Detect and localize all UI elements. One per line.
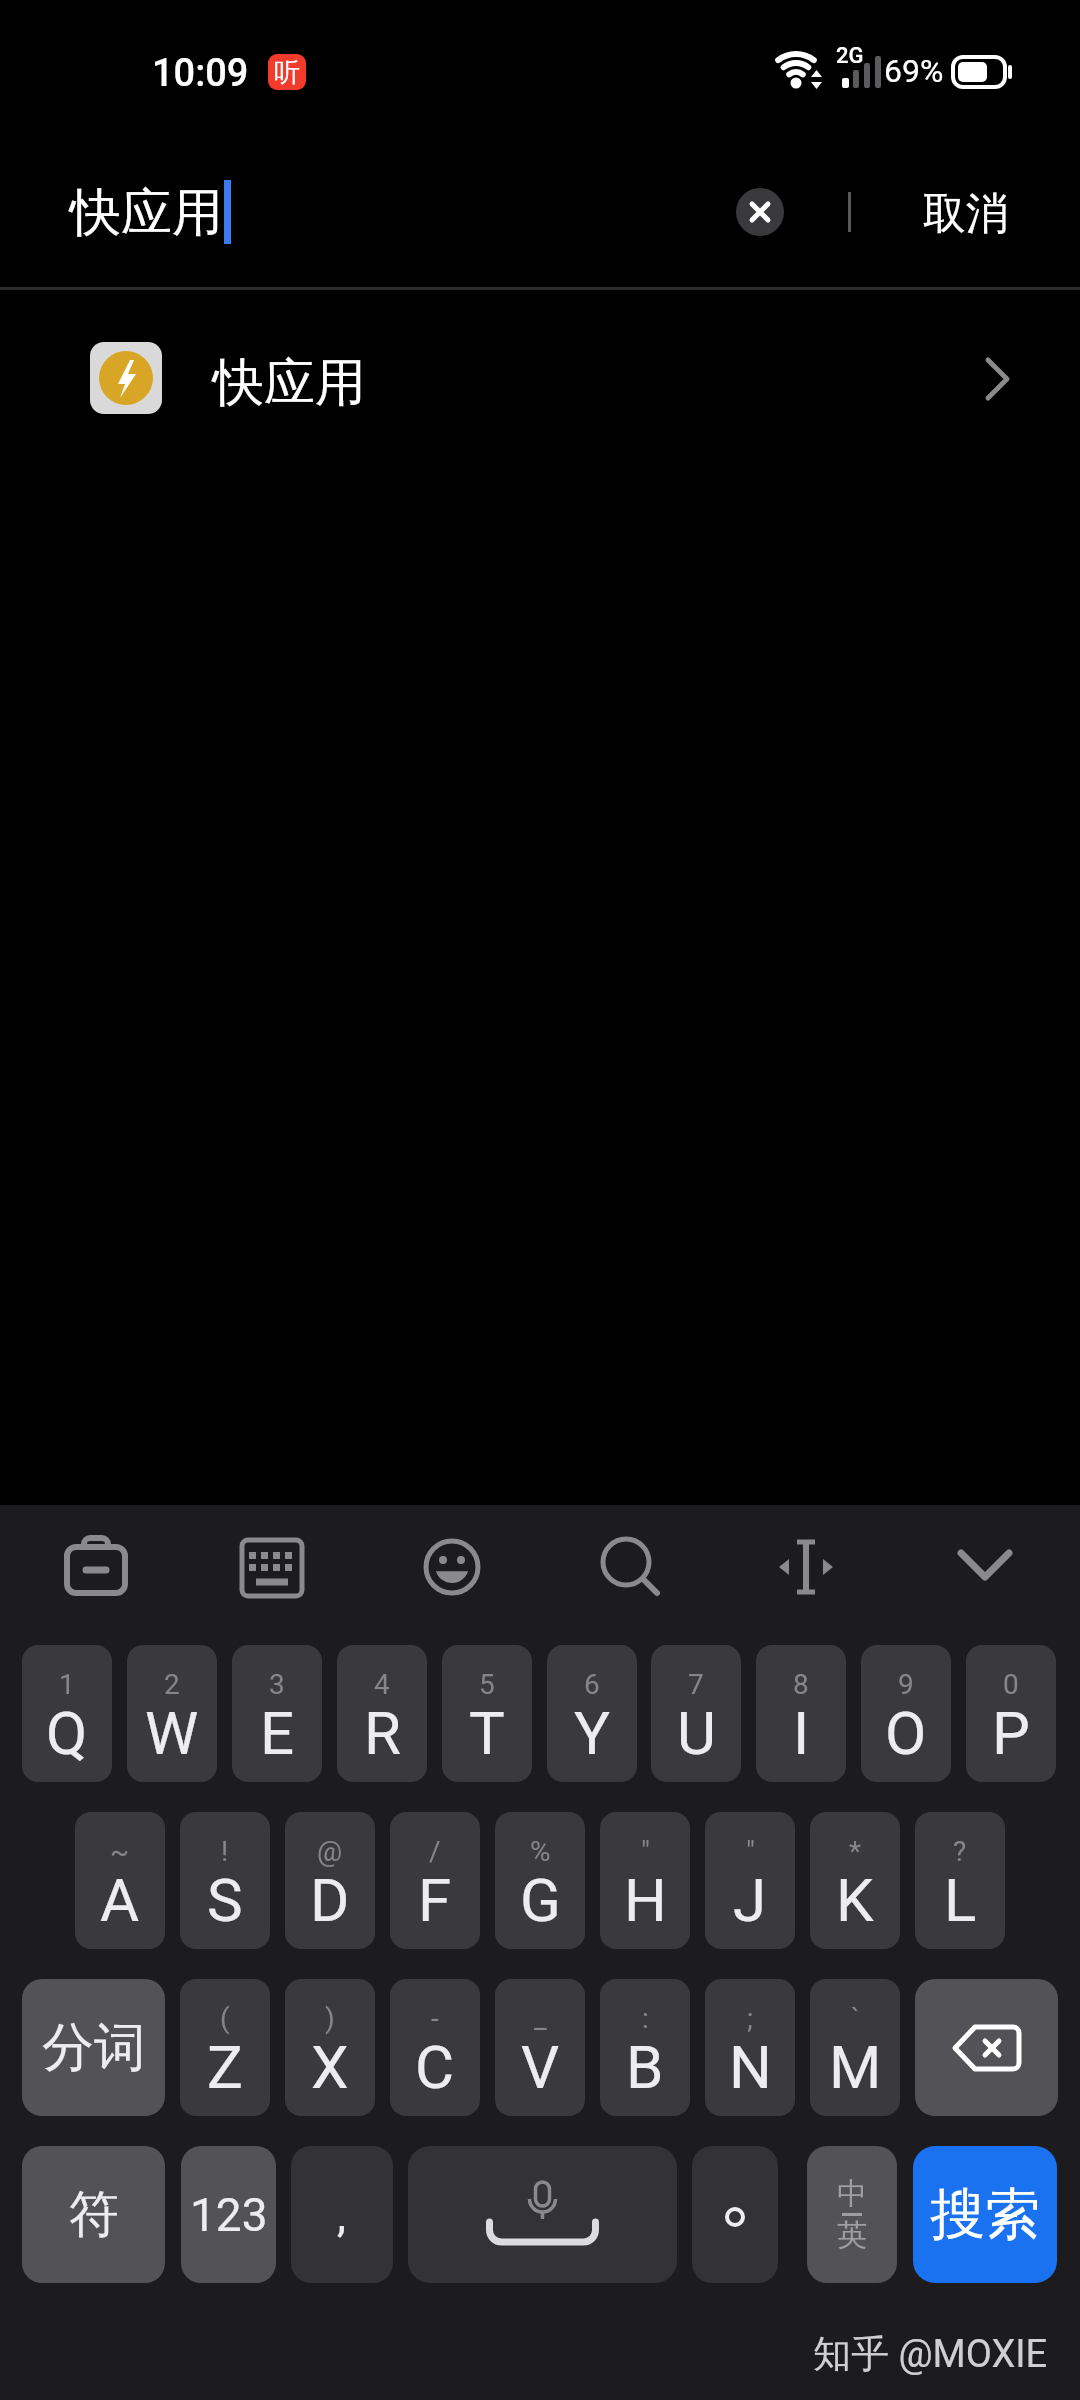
staticText: 搜索 [930,2180,1040,2249]
button[interactable]: 8 [756,1645,846,1782]
button[interactable]: _ [495,1979,585,2116]
button[interactable]: 搜索 [913,2146,1057,2283]
staticText: 123 [190,2188,268,2242]
staticText: Y [574,1698,611,1768]
staticText: " [746,1835,755,1868]
button[interactable]: / [390,1812,480,1949]
staticText: 69% [884,52,944,90]
staticText: 知乎 @MOXIE [813,2330,1048,2378]
staticText: V [521,2032,560,2102]
button[interactable]: , [291,2146,393,2283]
staticText: , [337,2188,347,2242]
button[interactable]: - [390,1979,480,2116]
button[interactable]: 取消 [898,182,984,236]
staticText: ; [747,2002,753,2035]
button[interactable]: ; [705,1979,795,2116]
staticText: 2G [836,43,864,69]
staticText: 8 [793,1668,809,1701]
button[interactable]: 123 [181,2146,276,2283]
staticText: ~ [110,1835,130,1868]
button[interactable] [423,1538,481,1596]
staticText: ` [851,2002,860,2035]
staticText: Q [46,1698,88,1768]
staticText: 取消 [923,187,1009,241]
button[interactable]: 分词 [22,1979,165,2116]
staticText: 6 [584,1668,600,1701]
staticText: R [364,1698,401,1768]
button[interactable]: @ [285,1812,375,1949]
staticText: * [849,1835,862,1868]
button[interactable]: ~ [75,1812,165,1949]
staticText: ! [221,1835,229,1868]
button[interactable]: * [810,1812,900,1949]
staticText: L [944,1865,977,1935]
staticText: 5 [479,1668,495,1701]
staticText: H [624,1865,667,1935]
button[interactable]: 中 [807,2146,897,2283]
button[interactable] [775,1538,837,1596]
button[interactable]: 0 [966,1645,1056,1782]
button[interactable]: 7 [651,1645,741,1782]
staticText: 3 [269,1668,285,1701]
button[interactable] [600,1536,662,1598]
staticText: 1 [59,1668,75,1701]
button[interactable]: ) [285,1979,375,2116]
staticText: Z [207,2032,243,2102]
button[interactable] [692,2146,778,2283]
staticText: 符 [69,2183,119,2246]
button[interactable]: 5 [442,1645,532,1782]
button[interactable]: 2 [127,1645,217,1782]
staticText: W [145,1698,199,1768]
button[interactable]: 4 [337,1645,427,1782]
staticText: 7 [688,1668,704,1701]
button[interactable]: ` [810,1979,900,2116]
staticText: C [415,2032,455,2102]
button[interactable]: ( [180,1979,270,2116]
staticText: T [469,1698,505,1768]
button[interactable] [62,1536,130,1600]
staticText: 9 [898,1668,914,1701]
staticText: P [992,1698,1030,1768]
button[interactable]: " [600,1812,690,1949]
staticText: 听 [274,56,300,89]
button[interactable]: 9 [861,1645,951,1782]
staticText: ? [953,1835,967,1868]
button[interactable]: 1 [22,1645,112,1782]
staticText: B [626,2032,664,2102]
staticText: 快应用 [70,181,223,245]
staticText: O [885,1698,927,1768]
button[interactable] [736,188,784,236]
button[interactable]: 符 [22,2146,165,2283]
button[interactable]: 快应用 [0,320,1080,438]
staticText: F [418,1865,452,1935]
button[interactable]: " [705,1812,795,1949]
button[interactable]: 6 [547,1645,637,1782]
staticText: ) [325,2002,335,2035]
button[interactable]: ! [180,1812,270,1949]
staticText: E [260,1698,295,1768]
button[interactable]: % [495,1812,585,1949]
staticText: / [429,1835,441,1868]
staticText: S [207,1865,243,1935]
button[interactable] [915,1979,1058,2116]
staticText: G [520,1865,561,1935]
button[interactable]: : [600,1979,690,2116]
staticText: 中 [837,2175,867,2213]
staticText: " [641,1835,650,1868]
staticText: _ [534,2002,547,2035]
staticText: 4 [374,1668,390,1701]
staticText: 分词 [42,2015,146,2081]
button[interactable]: 3 [232,1645,322,1782]
staticText: X [311,2032,349,2102]
staticText: : [642,2002,649,2035]
staticText: - [431,2002,439,2035]
button[interactable] [408,2146,677,2283]
staticText: K [836,1865,874,1935]
button[interactable] [955,1545,1015,1591]
staticText: @ [317,1835,343,1868]
staticText: A [100,1865,140,1935]
staticText: I [793,1698,810,1768]
button[interactable] [240,1538,304,1598]
button[interactable]: ? [915,1812,1005,1949]
staticText: ( [220,2002,230,2035]
